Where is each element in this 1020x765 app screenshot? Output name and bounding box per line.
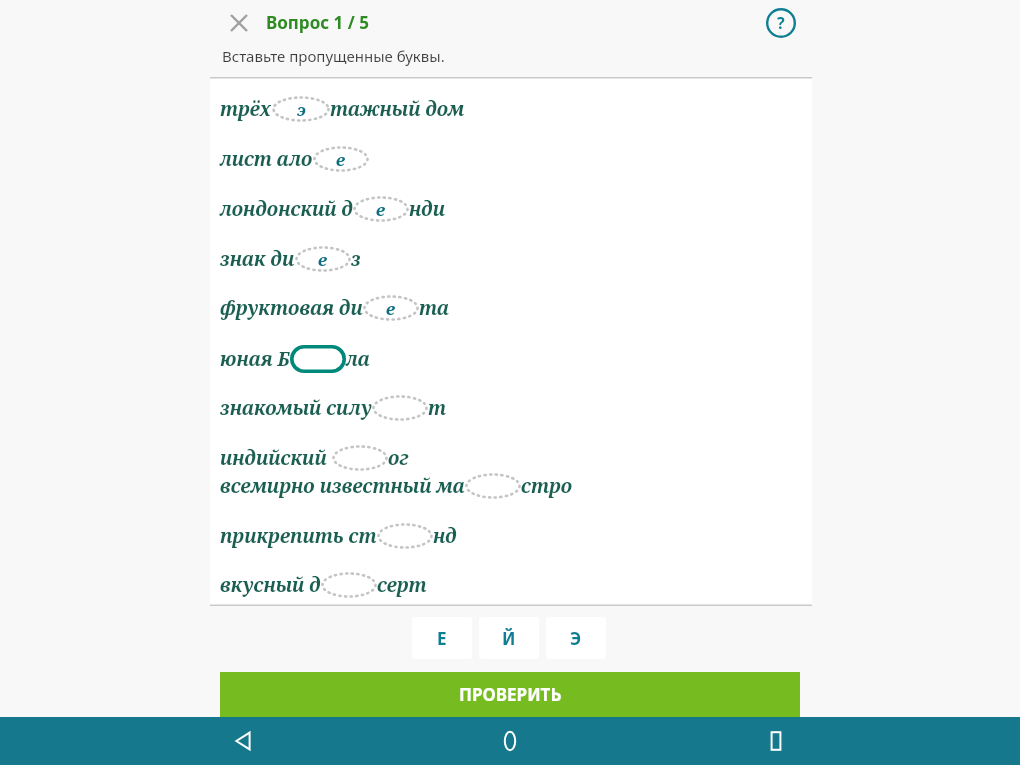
button[interactable]: всемирно известный ма (220, 472, 812, 500)
button[interactable]: Recent apps (754, 719, 798, 763)
staticText: Вставьте пропущенные буквы. (222, 46, 445, 66)
button[interactable]: Blank (321, 572, 377, 598)
button[interactable]: Э (546, 617, 606, 659)
button[interactable]: индийский (220, 444, 812, 472)
staticText: нди (409, 196, 446, 222)
button[interactable]: прикрепить ст (220, 522, 812, 550)
button[interactable]: Home (488, 719, 532, 763)
staticText: всемирно известный ма (220, 473, 465, 499)
button[interactable]: вкусный д (220, 571, 812, 599)
staticText: ла (346, 346, 370, 372)
staticText: вкусный д (220, 572, 321, 598)
staticText: лондонский д (220, 196, 353, 222)
staticText: лист ало (220, 146, 313, 172)
staticText: фруктовая ди (220, 295, 363, 321)
button[interactable]: Blank (372, 395, 428, 421)
button[interactable]: Blank (272, 96, 330, 122)
staticText: ? (777, 12, 785, 34)
staticText: юная Б (220, 346, 290, 372)
staticText: Й (502, 627, 516, 650)
button[interactable]: лондонский д (220, 195, 812, 223)
button[interactable]: Blank (353, 196, 409, 222)
button[interactable]: Blank (313, 146, 369, 172)
staticText: Э (570, 627, 582, 650)
staticText: е (386, 297, 396, 320)
staticText: з (351, 246, 361, 272)
staticText: е (336, 148, 346, 171)
button[interactable]: ПРОВЕРИТЬ (220, 672, 800, 717)
button[interactable]: Blank (377, 523, 433, 549)
staticText: нд (433, 523, 457, 549)
staticText: э (297, 98, 306, 121)
staticText: ог (388, 445, 409, 471)
staticText: знак ди (220, 246, 295, 272)
button[interactable]: Blank (465, 473, 521, 499)
button[interactable]: знак ди (220, 245, 812, 273)
button[interactable]: фруктовая ди (220, 294, 812, 322)
staticText: трёх (220, 96, 272, 122)
button[interactable]: Е (412, 617, 472, 659)
staticText: е (376, 198, 386, 221)
staticText: ПРОВЕРИТЬ (459, 683, 562, 706)
button[interactable]: Back (222, 719, 266, 763)
button[interactable]: Blank (363, 295, 419, 321)
button[interactable]: лист ало (220, 145, 812, 173)
button[interactable]: Blank (295, 246, 351, 272)
staticText: тажный дом (330, 96, 465, 122)
staticText: серт (377, 572, 427, 598)
button[interactable]: Й (479, 617, 539, 659)
staticText: е (318, 248, 328, 271)
staticText: стро (521, 473, 573, 499)
staticText: Е (437, 627, 447, 650)
staticText: Вопрос 1 / 5 (266, 11, 369, 34)
button[interactable]: Help (763, 5, 799, 41)
button[interactable]: знакомый силу (220, 394, 812, 422)
staticText: та (419, 295, 449, 321)
button[interactable]: Close (222, 6, 256, 40)
staticText: индийский (220, 445, 332, 471)
staticText: прикрепить ст (220, 523, 377, 549)
staticText: знакомый силу (220, 395, 372, 421)
button[interactable]: Blank (332, 445, 388, 471)
button[interactable]: Selected blank (290, 345, 346, 373)
button[interactable]: трёх (220, 95, 812, 123)
staticText: т (428, 395, 447, 421)
button[interactable]: юная Б (220, 345, 812, 373)
